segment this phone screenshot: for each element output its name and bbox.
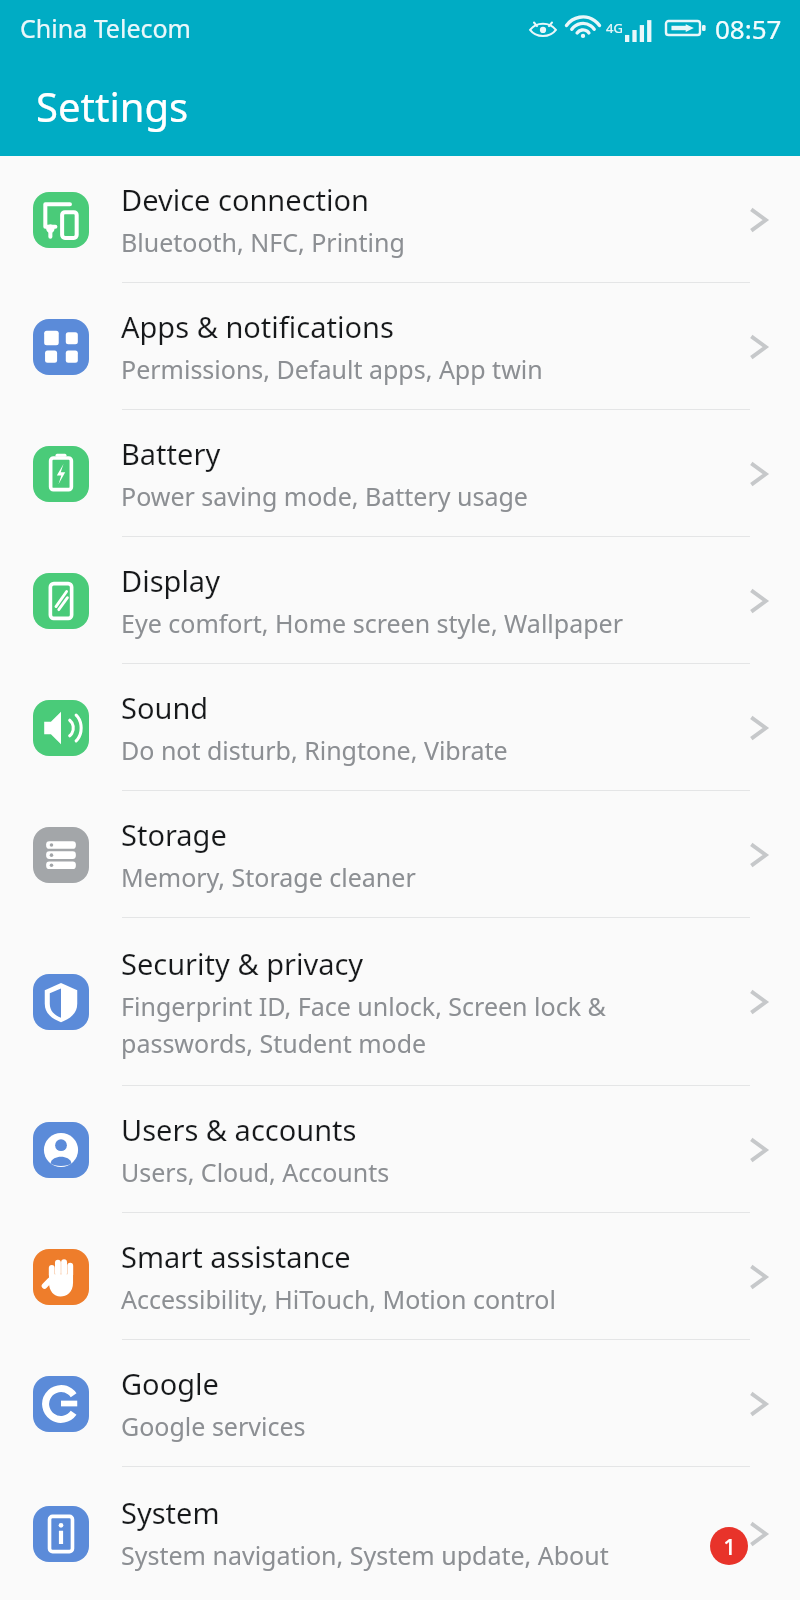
staticText: Fingerprint ID, Face unlock, Screen lock… [121,989,606,1060]
staticText: Smart assistance [121,1237,351,1276]
button[interactable]: Display [0,537,800,664]
button[interactable]: Google [0,1340,800,1467]
staticText: Users & accounts [121,1110,357,1149]
staticText: Memory, Storage cleaner [121,860,416,894]
staticText: Permissions, Default apps, App twin [121,352,543,386]
staticText: Display [121,561,220,600]
staticText: Settings [36,79,189,133]
staticText: Google services [121,1409,306,1443]
staticText: 4G [606,19,623,37]
staticText: Sound [121,688,209,727]
staticText: 1 [723,1531,736,1561]
staticText: Security & privacy [121,944,364,983]
button[interactable]: Security & privacy [0,918,800,1086]
button[interactable]: Device connection [0,156,800,283]
staticText: Power saving mode, Battery usage [121,479,528,513]
staticText: Accessibility, HiTouch, Motion control [121,1282,556,1316]
staticText: Battery [121,434,221,473]
staticText: Do not disturb, Ringtone, Vibrate [121,733,508,767]
staticText: Google [121,1364,219,1403]
staticText: Device connection [121,180,369,219]
staticText: System navigation, System update, About … [121,1538,609,1574]
staticText: System [121,1493,220,1532]
staticText: 08:57 [715,11,782,46]
staticText: Apps & notifications [121,307,394,346]
staticText: Bluetooth, NFC, Printing [121,225,405,259]
button[interactable]: Apps & notifications [0,283,800,410]
button[interactable]: Storage [0,791,800,918]
staticText: Storage [121,815,227,854]
button[interactable]: Sound [0,664,800,791]
staticText: Users, Cloud, Accounts [121,1155,390,1189]
staticText: China Telecom [20,11,191,45]
button[interactable]: Battery [0,410,800,537]
button[interactable]: Smart assistance [0,1213,800,1340]
button[interactable]: Users & accounts [0,1086,800,1213]
button[interactable]: System [0,1467,800,1600]
staticText: Eye comfort, Home screen style, Wallpape… [121,606,623,640]
